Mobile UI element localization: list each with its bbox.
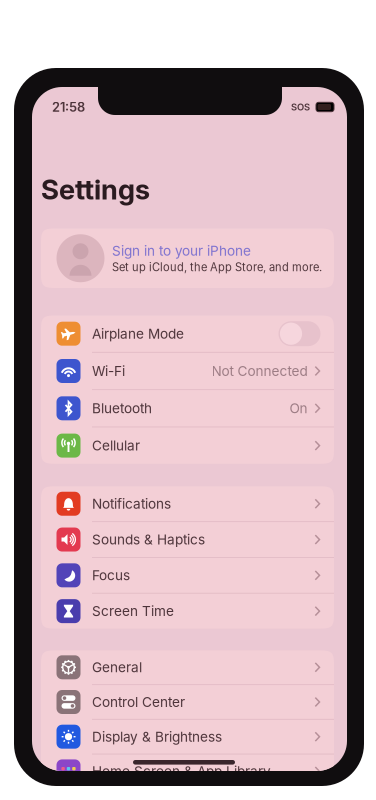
button[interactable]: Bluetooth — [41, 390, 334, 427]
button[interactable]: Focus — [41, 558, 334, 594]
staticText: Focus — [92, 567, 130, 584]
button[interactable]: Display & Brightness — [41, 720, 334, 754]
staticText: Cellular — [92, 437, 140, 454]
staticText: Control Center — [92, 694, 185, 710]
staticText: Settings — [41, 173, 150, 206]
button[interactable]: Wi-Fi — [41, 353, 334, 390]
button[interactable]: Cellular — [41, 427, 334, 464]
button[interactable]: Notifications — [41, 486, 334, 522]
staticText: On — [289, 400, 307, 417]
staticText: Screen Time — [92, 603, 174, 619]
staticText: Not Connected — [211, 363, 307, 379]
staticText: 21:58 — [52, 99, 85, 115]
staticText: Airplane Mode — [92, 325, 184, 342]
staticText: Notifications — [92, 495, 171, 512]
button[interactable]: Screen Time — [41, 594, 334, 629]
button[interactable]: Sounds & Haptics — [41, 522, 334, 558]
staticText: Bluetooth — [92, 400, 152, 417]
staticText: Sign in to your iPhone — [112, 243, 251, 259]
button[interactable]: General — [41, 650, 334, 685]
staticText: Display & Brightness — [92, 728, 222, 745]
staticText: Set up iCloud, the App Store, and more. — [112, 260, 322, 274]
button[interactable]: Sign in to your iPhone — [41, 228, 334, 288]
button[interactable]: Control Center — [41, 685, 334, 720]
button[interactable]: Home Screen & App Library — [41, 754, 334, 788]
staticText: SOS — [291, 101, 310, 113]
button[interactable]: Airplane Mode — [41, 315, 334, 353]
staticText: General — [92, 659, 142, 676]
staticText: Home Screen & App Library — [92, 763, 271, 780]
staticText: Sounds & Haptics — [92, 531, 205, 548]
staticText: Wi-Fi — [92, 363, 125, 379]
